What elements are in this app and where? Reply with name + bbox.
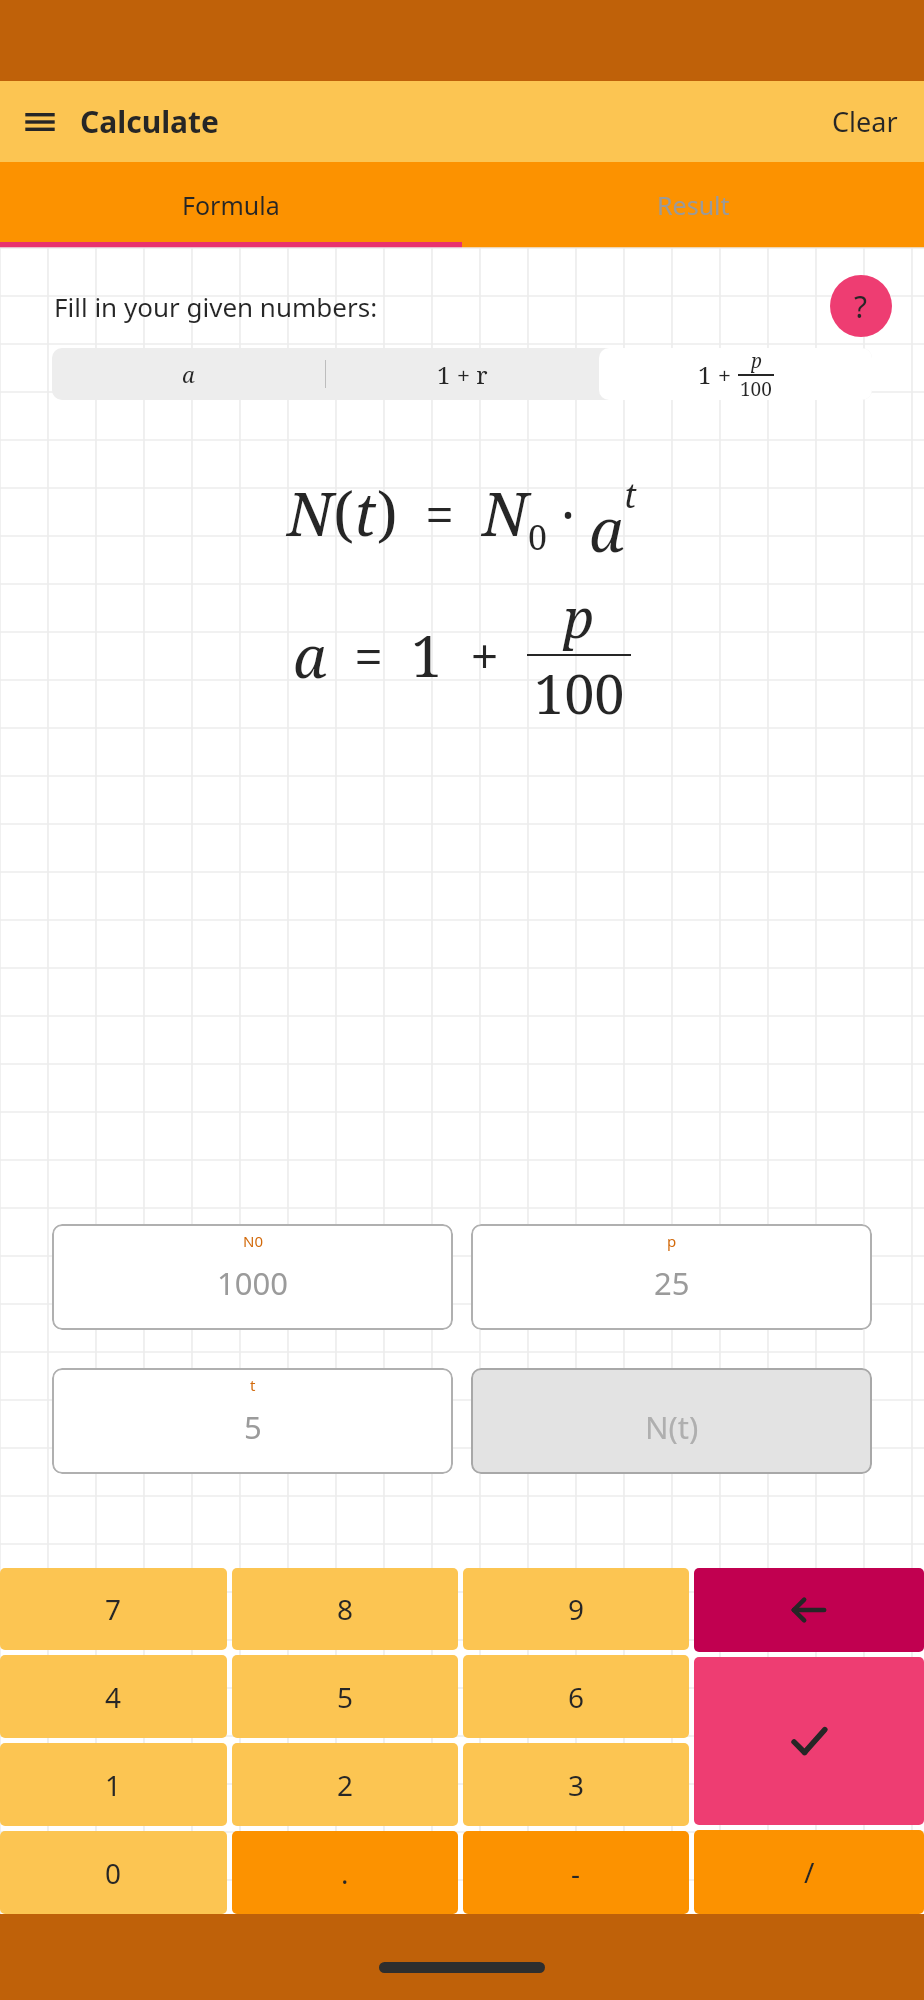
button[interactable]: 9 (463, 1568, 689, 1650)
button[interactable]: Menu (20, 102, 60, 142)
button[interactable]: t (52, 1368, 453, 1474)
button[interactable]: 2 (232, 1743, 458, 1826)
staticText: · (548, 478, 589, 549)
staticText: a (293, 616, 327, 695)
staticText: 100 (740, 376, 772, 400)
staticText: / (804, 1853, 815, 1891)
button[interactable]: Formula (0, 162, 462, 248)
button[interactable]: / (694, 1830, 924, 1914)
staticText: t (624, 472, 637, 518)
staticText: 8 (337, 1590, 354, 1628)
button[interactable]: 8 (232, 1568, 458, 1650)
staticText: Clear (832, 103, 898, 140)
button[interactable]: - (463, 1831, 689, 1914)
button[interactable]: Backspace (694, 1568, 924, 1652)
staticText: p (667, 1231, 677, 1251)
staticText: 1 (411, 617, 443, 693)
staticText: 5 (244, 1406, 262, 1448)
staticText: 0 (528, 514, 548, 560)
staticText: 9 (568, 1590, 585, 1628)
staticText: 100 (534, 656, 625, 730)
staticText: 1000 (217, 1262, 288, 1304)
staticText: 25 (654, 1262, 690, 1304)
staticText: Calculate (80, 101, 219, 142)
button[interactable]: . (232, 1831, 458, 1914)
button[interactable]: N0 (52, 1224, 453, 1330)
button[interactable]: 1 + r (326, 348, 599, 400)
button[interactable]: 7 (0, 1568, 227, 1650)
staticText: 5 (337, 1678, 354, 1716)
staticText: N(t) (645, 1406, 699, 1448)
staticText: 6 (568, 1678, 585, 1716)
staticText: 1 + (698, 358, 738, 391)
button[interactable]: 5 (232, 1655, 458, 1738)
staticText: p (563, 580, 595, 654)
staticText: t (354, 472, 377, 554)
staticText: ( (333, 472, 354, 554)
button[interactable]: Confirm (694, 1657, 924, 1825)
button[interactable]: 4 (0, 1655, 227, 1738)
button[interactable]: a (52, 348, 325, 400)
staticText: + (443, 620, 527, 691)
staticText: 0 (105, 1854, 122, 1892)
button[interactable]: Result (462, 162, 924, 248)
button[interactable]: p (471, 1224, 872, 1330)
staticText: N0 (243, 1231, 263, 1251)
staticText: 3 (568, 1766, 585, 1804)
button[interactable]: 6 (463, 1655, 689, 1738)
button[interactable]: Help (830, 275, 892, 337)
staticText: t (250, 1375, 256, 1395)
button[interactable]: 0 (0, 1831, 227, 1914)
staticText: Result (657, 188, 730, 222)
staticText: p (751, 348, 762, 374)
staticText: 4 (105, 1678, 122, 1716)
staticText: . (341, 1854, 349, 1892)
staticText: 1 (105, 1766, 122, 1804)
staticText: ) (377, 472, 398, 554)
staticText: 2 (337, 1766, 354, 1804)
button[interactable]: 3 (463, 1743, 689, 1826)
staticText: - (571, 1854, 581, 1892)
button[interactable]: N(t) (471, 1368, 872, 1474)
staticText: = (398, 478, 482, 549)
staticText: 7 (105, 1590, 122, 1628)
staticText: a (182, 359, 195, 389)
staticText: = (327, 620, 411, 691)
staticText: Formula (182, 188, 280, 222)
button[interactable]: 1 + (599, 348, 872, 400)
staticText: Fill in your given numbers: (54, 289, 378, 324)
button[interactable]: 1 (0, 1743, 227, 1826)
staticText: N (287, 472, 333, 554)
button[interactable]: Clear (826, 97, 904, 146)
staticText: N (482, 472, 528, 554)
staticText: a (589, 488, 624, 570)
staticText: ? (854, 286, 868, 327)
staticText: 1 + r (437, 358, 488, 391)
